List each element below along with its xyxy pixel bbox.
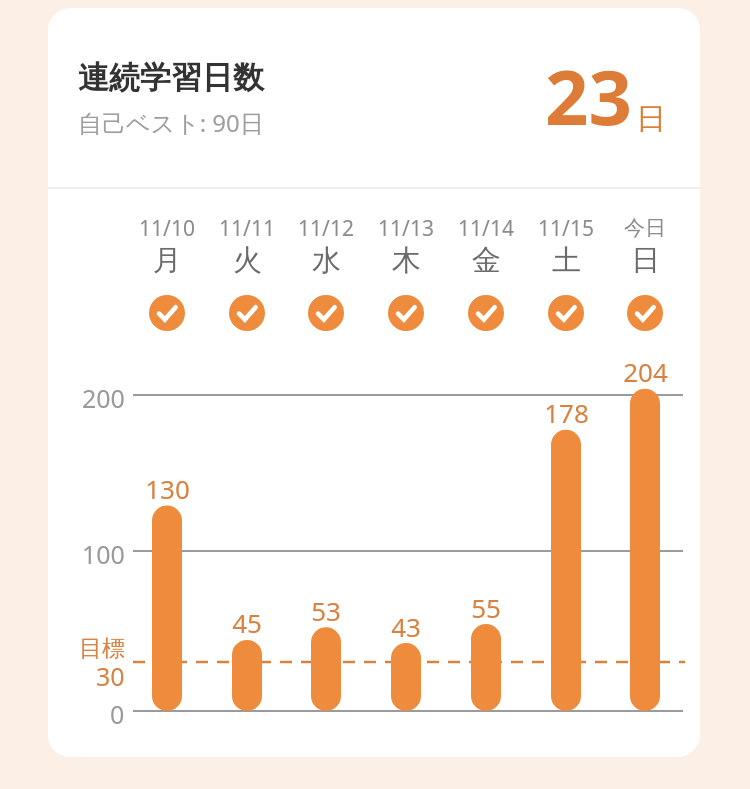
- staticText: 連続学習日数: [78, 58, 264, 97]
- staticText: 23: [545, 44, 632, 140]
- button[interactable]: 土曜日 達成: [548, 295, 584, 331]
- staticText: 木: [392, 242, 421, 279]
- staticText: 11/14: [458, 214, 514, 242]
- staticText: 130: [145, 471, 190, 503]
- staticText: 自己ベスト: 90日: [78, 106, 264, 139]
- staticText: 今日: [624, 215, 666, 241]
- staticText: 53: [311, 593, 341, 625]
- staticText: 日: [636, 100, 666, 138]
- staticText: 0: [110, 697, 125, 729]
- staticText: 火: [233, 242, 262, 279]
- staticText: 11/12: [298, 214, 354, 242]
- staticText: 水: [312, 242, 341, 279]
- button[interactable]: 月曜日 達成: [149, 295, 185, 331]
- staticText: 45: [232, 605, 262, 637]
- staticText: 金: [472, 242, 501, 279]
- staticText: 30: [96, 659, 125, 689]
- staticText: 55: [471, 590, 501, 622]
- staticText: 11/10: [139, 214, 195, 242]
- button[interactable]: 木曜日 達成: [388, 295, 424, 331]
- staticText: 月: [153, 242, 182, 279]
- staticText: 100: [82, 537, 125, 569]
- button[interactable]: 日曜日 達成: [627, 295, 663, 331]
- button[interactable]: 金曜日 達成: [468, 295, 504, 331]
- staticText: 178: [544, 395, 589, 427]
- button[interactable]: 火曜日 達成: [229, 295, 265, 331]
- staticText: 日: [631, 242, 660, 279]
- staticText: 43: [391, 609, 421, 641]
- staticText: 11/15: [538, 214, 594, 242]
- staticText: 11/11: [219, 214, 275, 242]
- button[interactable]: 水曜日 達成: [308, 295, 344, 331]
- staticText: 200: [82, 381, 125, 413]
- staticText: 目標: [79, 634, 125, 662]
- staticText: 204: [623, 354, 668, 386]
- staticText: 土: [552, 242, 581, 279]
- staticText: 11/13: [378, 214, 434, 242]
